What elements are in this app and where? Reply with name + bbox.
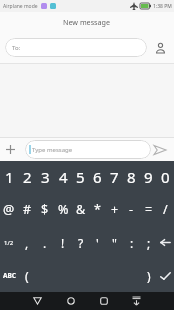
staticText: Airplane mode — [3, 3, 38, 10]
staticText: : — [130, 235, 134, 251]
button[interactable]: . — [36, 226, 54, 259]
staticText: ' — [96, 235, 99, 251]
button[interactable]: / — [157, 193, 174, 226]
button[interactable]: ) — [140, 259, 157, 292]
button[interactable] — [157, 226, 174, 259]
staticText: @ — [3, 201, 15, 218]
staticText: 7 — [110, 167, 119, 187]
button[interactable]: , — [18, 226, 36, 259]
button[interactable]: 1 — [0, 161, 18, 193]
button[interactable] — [155, 42, 166, 54]
button[interactable]: $ — [36, 193, 54, 226]
button[interactable]: & — [72, 193, 89, 226]
staticText: ? — [78, 235, 84, 251]
button[interactable] — [54, 292, 87, 310]
button[interactable] — [6, 145, 15, 154]
button[interactable] — [157, 259, 174, 292]
button[interactable]: 1/2 — [0, 226, 18, 259]
staticText: 6 — [93, 167, 102, 187]
button[interactable]: 8 — [123, 161, 140, 193]
staticText: 1/2 — [4, 239, 14, 247]
button[interactable]: % — [54, 193, 72, 226]
staticText: 9 — [144, 167, 153, 187]
staticText: * — [94, 201, 101, 218]
button[interactable]: - — [123, 193, 140, 226]
staticText: 8 — [127, 167, 136, 187]
staticText: + — [111, 201, 119, 218]
button[interactable]: = — [140, 193, 157, 226]
staticText: 3 — [41, 167, 50, 187]
staticText: - — [129, 201, 134, 218]
staticText: % — [58, 201, 69, 218]
staticText: To: — [12, 44, 21, 52]
staticText: ; — [147, 235, 151, 251]
staticText: / — [163, 201, 168, 218]
button[interactable]: ' — [89, 226, 106, 259]
staticText: " — [112, 235, 117, 251]
button[interactable]: + — [106, 193, 123, 226]
staticText: 2 — [23, 167, 32, 187]
staticText: New message — [63, 17, 111, 27]
button[interactable]: 6 — [89, 161, 106, 193]
button[interactable] — [153, 144, 167, 156]
button[interactable]: 3 — [36, 161, 54, 193]
button[interactable]: To: — [5, 38, 147, 57]
button[interactable]: 4 — [54, 161, 72, 193]
button[interactable]: " — [106, 226, 123, 259]
staticText: Type message — [32, 146, 73, 154]
staticText: 1:38 PM — [153, 3, 172, 10]
staticText: ) — [147, 268, 151, 284]
button[interactable] — [120, 292, 153, 310]
staticText: ABC — [3, 271, 16, 280]
button[interactable]: ; — [140, 226, 157, 259]
staticText: 4 — [59, 167, 68, 187]
staticText: , — [25, 235, 29, 251]
button[interactable]: ( — [18, 259, 36, 292]
button[interactable]: 7 — [106, 161, 123, 193]
button[interactable]: Type message — [25, 140, 151, 159]
staticText: ( — [25, 268, 29, 284]
button[interactable]: : — [123, 226, 140, 259]
button[interactable] — [21, 292, 54, 310]
staticText: . — [43, 235, 47, 251]
button[interactable]: @ — [0, 193, 18, 226]
staticText: & — [76, 201, 86, 218]
button[interactable]: 9 — [140, 161, 157, 193]
button[interactable] — [87, 292, 120, 310]
button[interactable]: ! — [54, 226, 72, 259]
button[interactable]: 0 — [157, 161, 174, 193]
button[interactable]: # — [18, 193, 36, 226]
staticText: 1 — [5, 167, 14, 187]
button[interactable]: ABC — [0, 259, 18, 292]
staticText: = — [145, 201, 153, 218]
staticText: ! — [61, 235, 65, 251]
staticText: 5 — [76, 167, 85, 187]
staticText: $ — [41, 201, 49, 218]
staticText: # — [23, 201, 32, 218]
button[interactable]: * — [89, 193, 106, 226]
button[interactable]: 5 — [72, 161, 89, 193]
button[interactable]: ? — [72, 226, 89, 259]
button[interactable]: 2 — [18, 161, 36, 193]
staticText: 0 — [161, 167, 170, 187]
